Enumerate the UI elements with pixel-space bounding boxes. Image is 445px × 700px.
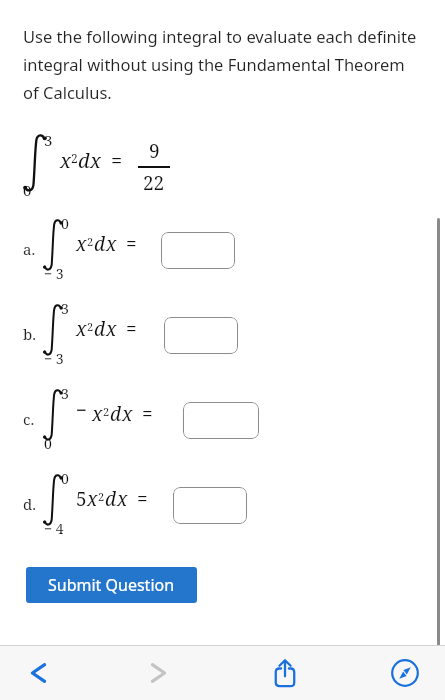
staticText: d (94, 316, 106, 342)
staticText: − 3 (44, 349, 64, 368)
button[interactable] (161, 232, 235, 269)
staticText: 0 (23, 180, 32, 200)
staticText: x (90, 147, 101, 174)
staticText: 2 (98, 489, 105, 504)
button[interactable]: Share (262, 650, 308, 696)
button[interactable]: Bookmarks (382, 650, 428, 696)
staticText: x (92, 401, 103, 427)
staticText: 5 (76, 486, 87, 512)
staticText: 0 (61, 469, 69, 488)
button[interactable]: Back (15, 650, 61, 696)
staticText: b. (23, 324, 36, 344)
staticText: d (78, 147, 90, 174)
staticText: 2 (87, 234, 94, 249)
staticText: x (106, 231, 117, 257)
staticText: x (117, 486, 128, 512)
staticText: a. (23, 239, 36, 259)
staticText: x (76, 231, 87, 257)
staticText: d. (23, 494, 36, 514)
staticText: − 3 (44, 264, 64, 283)
staticText: 2 (87, 319, 94, 334)
staticText: x (87, 486, 98, 512)
staticText: 3 (61, 299, 69, 318)
staticText: x (60, 147, 71, 174)
button[interactable] (173, 487, 247, 524)
staticText: 0 (44, 434, 52, 453)
staticText: − (76, 397, 88, 423)
staticText: 2 (71, 150, 78, 166)
button[interactable]: Forward (136, 650, 182, 696)
staticText: Submit Question (48, 574, 175, 596)
staticText: Use the following integral to evaluate e… (23, 25, 423, 104)
staticText: = (137, 486, 148, 512)
staticText: = (126, 316, 137, 342)
staticText: 2 (103, 404, 110, 419)
staticText: − 4 (44, 519, 64, 538)
staticText: = (142, 401, 153, 427)
staticText: d (105, 486, 117, 512)
staticText: d (110, 401, 122, 427)
staticText: = (126, 231, 137, 257)
button[interactable] (183, 402, 259, 439)
button[interactable] (164, 317, 238, 354)
staticText: x (122, 401, 133, 427)
staticText: x (76, 316, 87, 342)
staticText: 22 (143, 170, 165, 196)
staticText: c. (23, 409, 35, 429)
staticText: 3 (44, 130, 53, 150)
staticText: 9 (149, 138, 160, 164)
staticText: 0 (61, 214, 69, 233)
button[interactable]: Submit Question (26, 567, 197, 603)
staticText: = (111, 147, 123, 174)
staticText: 3 (61, 384, 69, 403)
staticText: x (106, 316, 117, 342)
staticText: d (94, 231, 106, 257)
